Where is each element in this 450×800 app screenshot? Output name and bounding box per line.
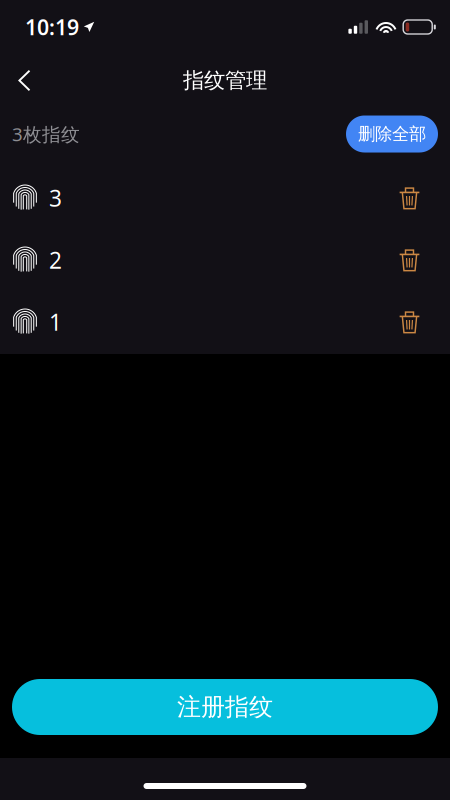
- button[interactable]: Delete fingerprint 1: [387, 296, 432, 348]
- staticText: 注册指纹: [177, 692, 273, 722]
- staticText: 删除全部: [358, 123, 426, 145]
- staticText: 2: [49, 245, 62, 275]
- staticText: 1: [49, 307, 62, 337]
- button[interactable]: 注册指纹: [12, 679, 438, 735]
- staticText: 3枚指纹: [12, 122, 80, 146]
- button[interactable]: 删除全部: [346, 115, 438, 152]
- button[interactable]: Back: [0, 51, 51, 102]
- staticText: 10:19: [25, 13, 79, 41]
- staticText: 指纹管理: [183, 67, 267, 94]
- button[interactable]: Delete fingerprint 3: [387, 172, 432, 224]
- staticText: 3: [49, 183, 62, 213]
- button[interactable]: Delete fingerprint 2: [387, 234, 432, 286]
